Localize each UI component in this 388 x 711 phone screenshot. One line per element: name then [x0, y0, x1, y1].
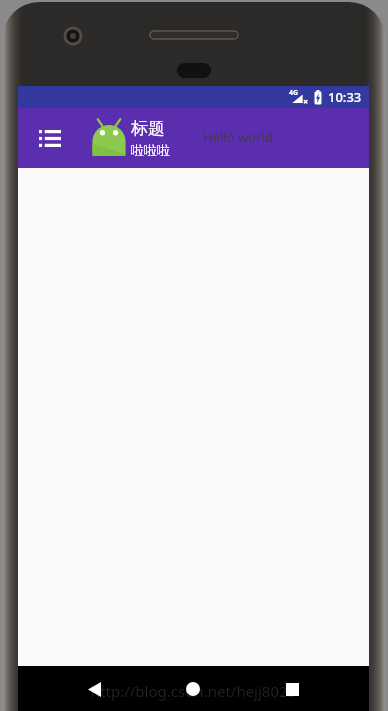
staticText: 啦啦啦	[131, 142, 170, 158]
button[interactable]: Back	[72, 667, 116, 711]
button[interactable]: Android logo	[86, 115, 132, 161]
staticText: 10:33	[328, 88, 362, 106]
button[interactable]: Open navigation drawer	[30, 118, 70, 158]
staticText: http://blog.csdn.net/hejj8023	[18, 681, 369, 701]
staticText: 标题	[131, 118, 165, 139]
staticText: 4G	[289, 88, 299, 98]
button[interactable]: Home	[171, 667, 215, 711]
staticText: Hello world	[203, 128, 273, 146]
button[interactable]: Recent apps	[270, 667, 314, 711]
